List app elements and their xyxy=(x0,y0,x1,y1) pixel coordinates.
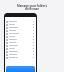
button[interactable] xyxy=(5,23,36,26)
button[interactable]: Continue xyxy=(6,66,35,72)
button[interactable] xyxy=(5,56,36,59)
button[interactable] xyxy=(5,38,36,41)
staticText: Manage your folders with ease xyxy=(17,4,47,11)
button[interactable] xyxy=(5,20,36,23)
button[interactable] xyxy=(5,41,36,44)
button[interactable] xyxy=(5,47,36,50)
button[interactable] xyxy=(5,44,36,47)
button[interactable] xyxy=(5,32,36,35)
button[interactable] xyxy=(5,50,36,53)
button[interactable] xyxy=(5,26,36,29)
button[interactable] xyxy=(5,29,36,32)
button[interactable] xyxy=(5,53,36,56)
button[interactable] xyxy=(5,35,36,38)
